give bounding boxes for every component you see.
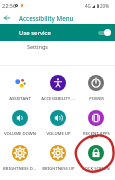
staticText: Use service xyxy=(19,29,51,37)
button[interactable]: VOLUME DOWN xyxy=(0,101,39,136)
staticText: 4G xyxy=(85,3,91,9)
staticText: Settings xyxy=(27,43,48,50)
button[interactable]: ASSISTANT xyxy=(0,66,39,101)
staticText: ACCESSIBILITY ... xyxy=(41,96,75,102)
button[interactable]: LOCK SCREEN xyxy=(77,136,115,171)
button[interactable]: Settings xyxy=(0,41,115,52)
staticText: 22:56 xyxy=(2,2,17,9)
button[interactable]: POWER xyxy=(77,66,115,101)
staticText: BRIGHTNESS UP xyxy=(42,166,75,172)
staticText: BRIGHTNESS D... xyxy=(3,166,36,172)
button[interactable]: Back xyxy=(0,11,14,24)
button[interactable]: BRIGHTNESS D... xyxy=(0,136,39,171)
staticText: POWER xyxy=(89,96,104,102)
button[interactable]: RECENT APPS xyxy=(77,101,115,136)
staticText: ASSISTANT xyxy=(9,96,31,102)
button[interactable]: ACCESSIBILITY ... xyxy=(39,66,77,101)
staticText: VOLUME UP xyxy=(46,131,71,137)
staticText: VOLUME DOWN xyxy=(4,131,36,137)
button[interactable]: Use service xyxy=(0,24,115,41)
staticText: LOCK SCREEN xyxy=(82,166,110,172)
button[interactable]: BRIGHTNESS UP xyxy=(39,136,77,171)
button[interactable]: VOLUME UP xyxy=(39,101,77,136)
staticText: RECENT APPS xyxy=(83,131,110,137)
staticText: Accessibility Menu xyxy=(19,14,74,22)
staticText: 20% xyxy=(100,3,109,9)
